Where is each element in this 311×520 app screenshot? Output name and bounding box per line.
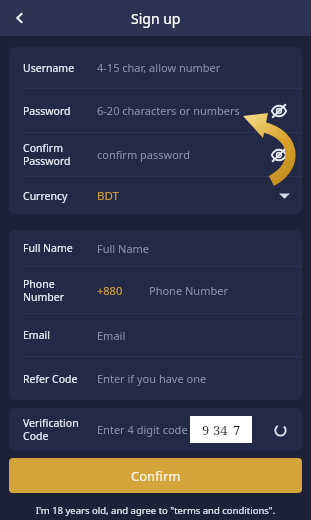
staticText: Sign up bbox=[131, 9, 181, 28]
staticText: Enter 4 digit code bbox=[97, 422, 188, 437]
staticText: Currency bbox=[23, 189, 89, 203]
button[interactable]: Refresh captcha bbox=[268, 418, 292, 442]
button[interactable]: Verification Code bbox=[9, 408, 302, 451]
button[interactable]: Password bbox=[9, 89, 302, 132]
staticText: Enter if you have one bbox=[97, 371, 207, 386]
button[interactable]: Show password bbox=[268, 100, 290, 122]
staticText: 6-20 characters or numbers bbox=[97, 103, 240, 118]
staticText: Verification Code bbox=[23, 416, 89, 443]
button[interactable]: Full Name bbox=[9, 230, 302, 266]
staticText: Full Name bbox=[23, 241, 89, 255]
staticText: I'm 18 years old, and agree to "terms an… bbox=[0, 504, 311, 517]
staticText: 7 bbox=[233, 421, 241, 439]
button[interactable]: Confirm bbox=[9, 458, 302, 493]
button[interactable]: Captcha image bbox=[190, 416, 252, 443]
staticText: Username bbox=[23, 61, 89, 75]
staticText: BDT bbox=[97, 188, 119, 204]
button[interactable]: Back bbox=[4, 2, 36, 34]
staticText: Confirm bbox=[131, 467, 181, 485]
button[interactable]: Currency bbox=[9, 177, 302, 214]
staticText: Email bbox=[97, 328, 126, 343]
staticText: 34 bbox=[213, 421, 228, 439]
button[interactable]: Phone Number bbox=[9, 267, 302, 313]
button[interactable]: Username bbox=[9, 47, 302, 88]
staticText: Phone Number bbox=[23, 277, 89, 304]
staticText: Password bbox=[23, 104, 89, 118]
staticText: +880 bbox=[97, 283, 123, 298]
staticText: 9 bbox=[202, 421, 210, 439]
staticText: Confirm Password bbox=[23, 141, 89, 168]
staticText: Phone Number bbox=[149, 283, 228, 298]
button[interactable]: Email bbox=[9, 314, 302, 356]
staticText: 4-15 char, allow number bbox=[97, 60, 221, 75]
staticText: Email bbox=[23, 328, 89, 342]
staticText: Full Name bbox=[97, 241, 150, 256]
staticText: Refer Code bbox=[23, 372, 89, 386]
button[interactable]: Confirm Password bbox=[9, 133, 302, 176]
staticText: confirm password bbox=[97, 147, 190, 162]
button[interactable]: Refer Code bbox=[9, 357, 302, 400]
button[interactable]: Show confirm password bbox=[268, 144, 290, 166]
